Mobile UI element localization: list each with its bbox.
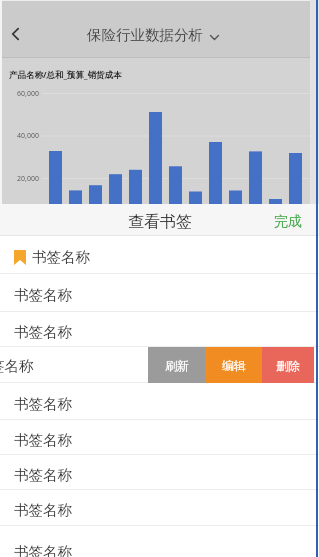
staticText: 40,000 [17,131,39,141]
staticText: 书签名称 [32,248,90,266]
staticText: 60,000 [17,89,39,99]
button[interactable]: 书签名称 [0,312,319,347]
button[interactable] [0,0,36,57]
staticText: 书签名称 [14,323,72,341]
staticText: 20,000 [17,174,39,184]
button[interactable]: 删除 [262,347,314,383]
button[interactable]: 保险行业数据分析 [87,26,219,44]
staticText: 查看书签 [128,212,192,232]
staticText: 完成 [274,213,302,231]
staticText: 产品名称/总和_预算_销货成本 [9,69,122,81]
staticText: 保险行业数据分析 [87,26,203,44]
button[interactable]: 编辑 [205,347,262,383]
button[interactable]: 书签名称 [0,420,319,455]
button[interactable]: 书签名称 [0,490,319,526]
staticText: 刷新 [165,358,189,373]
button[interactable]: 书签名称 [0,526,319,557]
button[interactable]: 书签名称 [0,455,319,490]
staticText: 签名称 [0,357,34,375]
button[interactable]: 书签名称 [0,236,319,274]
button[interactable]: 签名称 [0,347,319,383]
button[interactable]: 完成 [274,204,319,236]
button[interactable]: 书签名称 [0,274,319,312]
staticText: 书签名称 [14,466,72,484]
staticText: 书签名称 [14,286,72,304]
staticText: 书签名称 [14,501,72,519]
button[interactable]: 书签名称 [0,383,319,420]
staticText: 删除 [276,358,300,373]
button[interactable]: 刷新 [148,347,205,383]
staticText: 书签名称 [14,431,72,449]
staticText: 书签名称 [14,395,72,413]
staticText: 书签名称 [14,543,72,557]
staticText: 编辑 [222,358,246,373]
